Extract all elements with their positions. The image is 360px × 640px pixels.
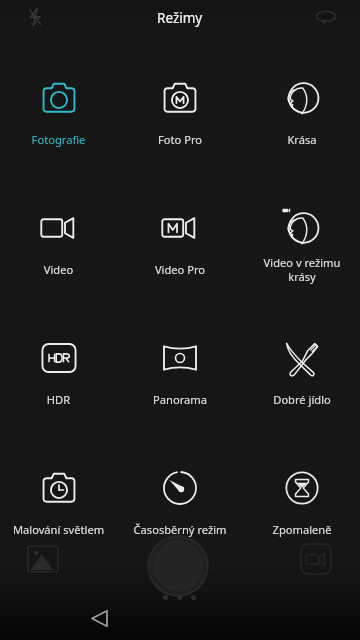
button[interactable]: Shutter <box>147 535 209 597</box>
staticText: Video v režimu krásy <box>249 255 355 285</box>
staticText: Krása <box>249 132 355 147</box>
staticText: Fotografie <box>6 132 111 147</box>
button[interactable]: Fotografie <box>0 76 119 159</box>
button[interactable]: Zpomaleně <box>241 466 360 549</box>
staticText: Panorama <box>127 392 233 407</box>
staticText: Časosběrný režim <box>127 522 233 537</box>
button[interactable]: Back <box>84 603 114 633</box>
button[interactable]: Panorama <box>119 336 241 419</box>
button[interactable]: Video <box>0 206 119 289</box>
staticText: Malování světlem <box>6 522 111 537</box>
staticText: Foto Pro <box>127 132 233 147</box>
staticText: Video Pro <box>127 262 233 277</box>
button[interactable]: Gallery <box>26 542 60 576</box>
button[interactable]: Video v režimu krásy <box>241 206 360 289</box>
button[interactable]: Dobré jídlo <box>241 336 360 419</box>
button[interactable]: Krása <box>241 76 360 159</box>
button[interactable]: Record video <box>298 541 334 577</box>
button[interactable]: Video Pro <box>119 206 241 289</box>
staticText: HDR <box>6 392 111 407</box>
button[interactable]: Foto Pro <box>119 76 241 159</box>
button[interactable]: Flash off <box>20 2 50 32</box>
staticText: Dobré jídlo <box>249 392 355 407</box>
staticText: Zpomaleně <box>249 522 355 537</box>
staticText: Video <box>6 262 111 277</box>
button[interactable]: Switch camera <box>310 1 342 33</box>
staticText: Režimy <box>157 9 203 27</box>
button[interactable]: HDR <box>0 336 119 419</box>
button[interactable]: Časosběrný režim <box>119 466 241 549</box>
button[interactable]: Malování světlem <box>0 466 119 549</box>
